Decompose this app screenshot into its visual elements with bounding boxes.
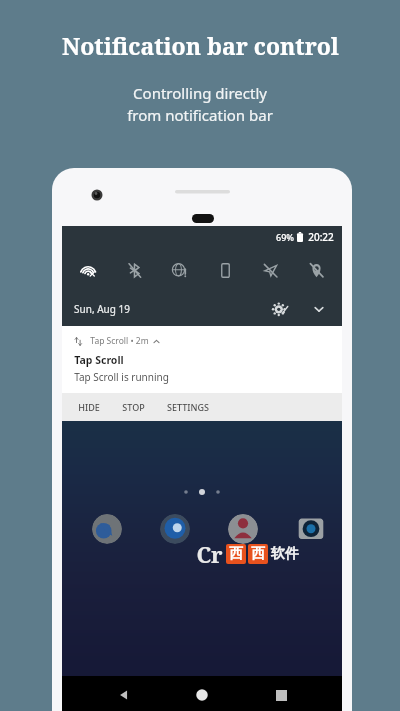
button[interactable]: Location off — [300, 254, 332, 286]
staticText: 软件 — [271, 545, 299, 563]
staticText: Folder — [114, 377, 138, 388]
button[interactable]: Home — [185, 678, 219, 711]
staticText: STOP — [122, 401, 145, 413]
staticText: Tap Scroll — [74, 353, 124, 367]
staticText: 20:22 — [308, 230, 334, 244]
button[interactable]: Expand — [308, 298, 330, 320]
staticText: Tap Scroll is running — [74, 370, 169, 384]
button[interactable]: Bluetooth off — [118, 254, 150, 286]
button[interactable]: HIDE — [76, 397, 102, 417]
staticText: from notification bar — [127, 105, 273, 125]
button[interactable]: SIM — [209, 254, 241, 286]
button[interactable]: Phone — [92, 514, 122, 544]
button[interactable]: Messages — [160, 514, 190, 544]
button[interactable]: Camera — [296, 514, 326, 544]
button[interactable]: Data warning — [163, 254, 195, 286]
button[interactable]: Folder — [122, 340, 156, 374]
button[interactable]: Wi-Fi off — [72, 254, 104, 286]
staticText: 西 — [251, 545, 265, 563]
staticText: 69% — [276, 231, 294, 243]
button[interactable]: Send off — [254, 254, 286, 286]
button[interactable]: Settings — [270, 298, 292, 320]
button[interactable]: Tap Scroll • 2m — [62, 326, 342, 393]
button[interactable]: STOP — [120, 397, 147, 417]
staticText: Controlling directly — [133, 83, 267, 103]
button[interactable]: Contacts — [228, 514, 258, 544]
button[interactable]: SETTINGS — [165, 397, 211, 417]
staticText: Sun, Aug 19 — [74, 302, 130, 316]
staticText: Notification bar control — [62, 30, 339, 61]
button[interactable]: Back — [107, 678, 141, 711]
staticText: HIDE — [78, 401, 100, 413]
staticText: 西 — [229, 545, 243, 563]
staticText: Tap Scroll • 2m — [90, 335, 149, 347]
staticText: Cr — [196, 539, 223, 569]
staticText: SETTINGS — [167, 401, 209, 413]
button[interactable]: Recents — [264, 678, 298, 711]
